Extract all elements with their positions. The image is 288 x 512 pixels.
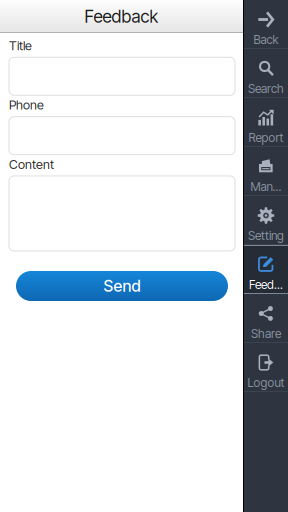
button[interactable]	[9, 176, 235, 251]
staticText: Send	[103, 276, 140, 296]
button[interactable]: Report	[244, 98, 288, 147]
button[interactable]: Feed...	[244, 245, 288, 294]
button[interactable]: Share	[244, 294, 288, 343]
button[interactable]: Search	[244, 49, 288, 98]
staticText: Phone	[9, 97, 44, 113]
staticText: Search	[248, 81, 284, 96]
button[interactable]: Logout	[244, 343, 288, 392]
button[interactable]	[9, 117, 235, 155]
staticText: Share	[251, 326, 281, 341]
staticText: Content	[9, 157, 54, 172]
staticText: Man...	[250, 179, 281, 194]
staticText: Feed...	[249, 277, 283, 292]
staticText: Title	[9, 38, 32, 53]
staticText: Feedback	[84, 6, 158, 27]
button[interactable]: Man...	[244, 147, 288, 196]
button[interactable]: Setting	[244, 196, 288, 245]
button[interactable]	[9, 57, 235, 95]
staticText: Setting	[248, 228, 284, 243]
staticText: Back	[253, 32, 278, 47]
button[interactable]: Send	[16, 271, 228, 301]
staticText: Report	[248, 130, 283, 145]
staticText: Logout	[247, 375, 284, 390]
button[interactable]: Back	[244, 0, 288, 49]
